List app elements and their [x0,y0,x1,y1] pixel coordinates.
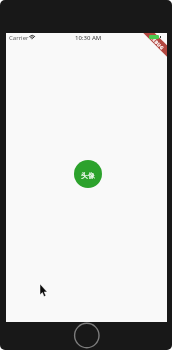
staticText: Carrier [9,34,29,42]
staticText: 头像 [81,171,95,180]
button[interactable]: 头像 [74,160,102,188]
staticText: DEBUG [149,34,166,51]
staticText: 10:30 AM [75,34,102,42]
